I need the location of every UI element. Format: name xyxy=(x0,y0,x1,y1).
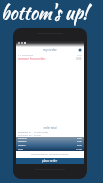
staticText: subtotal xyxy=(18,137,27,140)
staticText: prices include vat · tap below to confir… xyxy=(31,153,69,156)
staticText: order total xyxy=(16,126,84,130)
staticText: place order xyxy=(42,159,58,163)
staticText: remove from order xyxy=(18,57,46,61)
staticText: 12.25 xyxy=(76,148,82,151)
staticText: 2.00 xyxy=(77,140,82,143)
staticText: total xyxy=(18,148,23,151)
button[interactable]: place order xyxy=(16,158,84,164)
staticText: 0.75 xyxy=(77,144,82,147)
staticText: bottom's up! xyxy=(1,0,89,25)
staticText: my order xyxy=(43,48,57,52)
staticText: arriving in 25 – 35 min xyxy=(18,134,41,137)
staticText: 1 x margarita xyxy=(18,53,34,56)
staticText: 9.50 xyxy=(76,57,82,61)
staticText: service xyxy=(18,144,26,147)
staticText: 9.50 xyxy=(77,53,82,56)
staticText: delivery xyxy=(18,140,27,143)
staticText: delivering to · 12 park street xyxy=(18,131,48,134)
staticText: 9.50 xyxy=(77,137,82,140)
button[interactable]: Cart xyxy=(78,48,82,52)
